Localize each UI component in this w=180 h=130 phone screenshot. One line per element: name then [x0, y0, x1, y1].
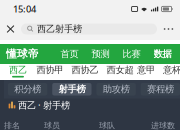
staticText: 15:04 [13, 3, 36, 15]
staticText: 西乙 · 射手榜 [18, 99, 70, 111]
button[interactable]: 西女超 [108, 64, 132, 80]
staticText: 助攻榜 [103, 83, 130, 95]
button[interactable]: Close [0, 18, 21, 40]
staticText: 球员 [44, 121, 60, 130]
staticText: 积分榜 [14, 83, 41, 95]
staticText: 预测 [91, 48, 109, 60]
button[interactable]: 西协乙 [73, 64, 97, 80]
staticText: 数据 [153, 48, 171, 60]
staticText: 赛程榜 [147, 83, 174, 95]
staticText: 射手榜 [58, 83, 85, 95]
staticText: 意杯 [163, 64, 180, 76]
button[interactable]: 西乙射手榜 [21, 23, 157, 34]
staticText: 球队 [99, 121, 115, 130]
staticText: 首页 [60, 48, 78, 60]
staticText: 进球数 [151, 121, 175, 130]
button[interactable]: 射手榜 [52, 83, 91, 95]
button[interactable]: 数据 [147, 44, 178, 64]
button[interactable]: 西乙 [6, 64, 30, 80]
button[interactable]: 西协甲 [38, 64, 62, 80]
staticText: 比赛 [122, 48, 140, 60]
staticText: 排名 [4, 121, 20, 130]
button[interactable]: 积分榜 [8, 83, 47, 95]
button[interactable]: 助攻榜 [96, 83, 136, 95]
button[interactable]: 首页 [54, 44, 85, 64]
staticText: 西乙射手榜 [37, 23, 82, 35]
staticText: 西协乙 [71, 64, 98, 76]
button[interactable]: 预测 [85, 44, 116, 64]
staticText: 意甲 [137, 64, 155, 76]
staticText: 西女超 [106, 64, 133, 76]
staticText: 懂球帝 [6, 47, 39, 60]
button[interactable]: 赛程榜 [141, 83, 180, 95]
button[interactable]: 意甲 [134, 64, 158, 80]
button[interactable]: 意杯 [160, 64, 180, 80]
staticText: 西乙 [9, 64, 27, 76]
staticText: 西协甲 [36, 64, 63, 76]
button[interactable]: 比赛 [116, 44, 147, 64]
button[interactable]: More [157, 18, 180, 40]
